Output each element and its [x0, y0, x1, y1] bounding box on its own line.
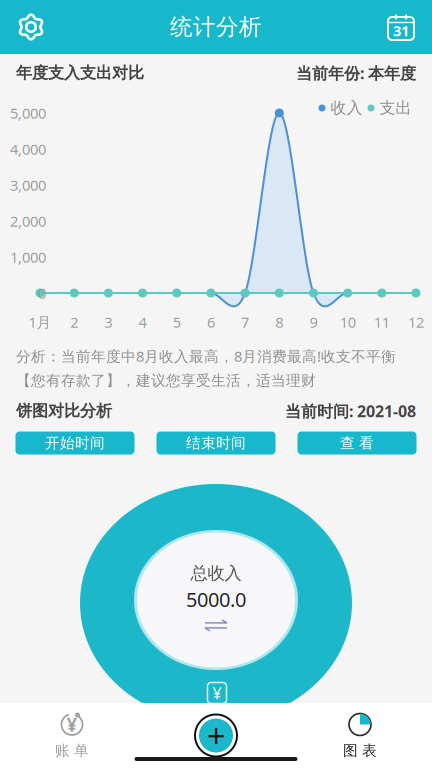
staticText: 总收入	[190, 563, 241, 584]
staticText: 收入	[330, 98, 362, 118]
staticText: 6	[207, 312, 215, 332]
button[interactable]: ¥	[0, 706, 144, 764]
button[interactable]: Add	[144, 706, 288, 764]
staticText: ¥	[212, 682, 221, 704]
staticText: 1,000	[10, 247, 46, 267]
staticText: ¥	[66, 712, 77, 737]
staticText: 当前年份: 本年度	[296, 62, 416, 84]
button[interactable]: 开始时间	[15, 431, 134, 454]
staticText: 10	[340, 312, 356, 332]
staticText: 【您有存款了】，建议您享受生活，适当理财	[16, 372, 316, 390]
button[interactable]: Settings	[0, 2, 54, 52]
staticText: 账 单	[55, 741, 89, 759]
button[interactable]: 查 看	[297, 431, 416, 454]
staticText: 1月	[28, 312, 51, 332]
staticText: 开始时间	[45, 434, 105, 452]
staticText: 统计分析	[170, 13, 262, 41]
button[interactable]: Calendar	[378, 3, 432, 51]
staticText: 4,000	[10, 139, 46, 159]
staticText: 分析：当前年度中8月收入最高，8月消费最高!收支不平衡	[16, 346, 396, 366]
staticText: 9	[309, 312, 317, 332]
staticText: 查 看	[340, 434, 374, 452]
button[interactable]: 图 表	[288, 706, 432, 764]
staticText: 年度支入支出对比	[16, 63, 144, 83]
staticText: 当前时间: 2021-08	[285, 400, 416, 422]
staticText: 3,000	[10, 175, 46, 195]
staticText: 图 表	[343, 741, 377, 759]
staticText: 5	[173, 312, 181, 332]
staticText: +	[207, 714, 225, 757]
staticText: 2	[70, 312, 78, 332]
staticText: 饼图对比分析	[16, 401, 112, 421]
staticText: 结束时间	[186, 434, 246, 452]
staticText: 3	[104, 312, 112, 332]
staticText: 31	[393, 21, 409, 40]
staticText: 支出	[379, 98, 411, 118]
staticText: 12	[408, 312, 424, 332]
staticText: 2,000	[10, 211, 46, 231]
staticText: 7	[241, 312, 249, 332]
staticText: 4	[138, 312, 146, 332]
staticText: 11	[374, 312, 390, 332]
button[interactable]: 结束时间	[156, 431, 275, 454]
staticText: 5,000	[10, 103, 46, 123]
staticText: 8	[275, 312, 283, 332]
staticText: 0	[38, 283, 46, 303]
staticText: 5000.0	[186, 586, 246, 612]
